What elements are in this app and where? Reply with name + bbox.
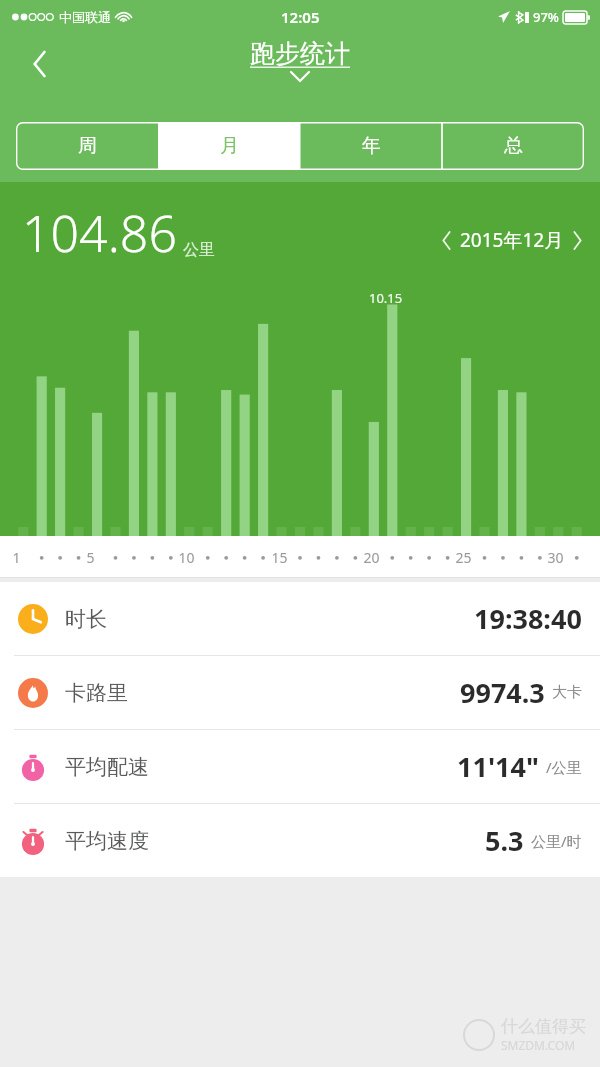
staticText: 公里/时	[531, 831, 582, 851]
staticText: 15	[271, 548, 288, 567]
staticText: 跑步统计	[250, 38, 350, 69]
button[interactable]: 平均速度	[0, 804, 600, 877]
staticText: 年	[362, 134, 381, 158]
button[interactable]: 月	[158, 122, 300, 170]
staticText: 97%	[533, 8, 559, 26]
staticText: 平均配速	[65, 754, 149, 780]
staticText: 时长	[65, 606, 107, 632]
staticText: SMZDM.COM	[501, 1037, 576, 1053]
staticText: 什么值得买	[501, 1016, 586, 1037]
staticText: 11'14"	[457, 748, 539, 785]
staticText: 104.86	[22, 199, 177, 267]
staticText: 公里	[183, 240, 215, 260]
staticText: 卡路里	[65, 680, 128, 706]
staticText: 25	[455, 548, 472, 567]
button[interactable]: 总	[442, 122, 584, 170]
button[interactable]: 年	[300, 122, 442, 170]
staticText: 30	[547, 548, 564, 567]
staticText: 1	[12, 548, 21, 567]
button[interactable]: 平均配速	[0, 730, 600, 803]
button[interactable]: 周	[16, 122, 158, 170]
staticText: 5.3	[485, 822, 524, 859]
staticText: 周	[78, 134, 97, 158]
staticText: 12:05	[281, 7, 320, 27]
button[interactable]: 2015年12月	[442, 227, 582, 253]
button[interactable]: 跑步统计	[250, 38, 350, 81]
staticText: 中国联通	[59, 9, 111, 25]
staticText: 20	[363, 548, 380, 567]
button[interactable]: Back	[18, 42, 62, 86]
staticText: 10.15	[369, 289, 403, 307]
staticText: 5	[86, 548, 95, 567]
staticText: 月	[220, 134, 239, 158]
button[interactable]: 卡路里	[0, 656, 600, 729]
button[interactable]: 时长	[0, 582, 600, 655]
staticText: 10	[178, 548, 195, 567]
staticText: 平均速度	[65, 828, 149, 854]
staticText: 19:38:40	[474, 600, 582, 637]
staticText: 9974.3	[460, 674, 545, 711]
staticText: 2015年12月	[460, 227, 564, 253]
staticText: 总	[504, 134, 523, 158]
staticText: 大卡	[552, 683, 582, 702]
staticText: /公里	[546, 757, 582, 777]
